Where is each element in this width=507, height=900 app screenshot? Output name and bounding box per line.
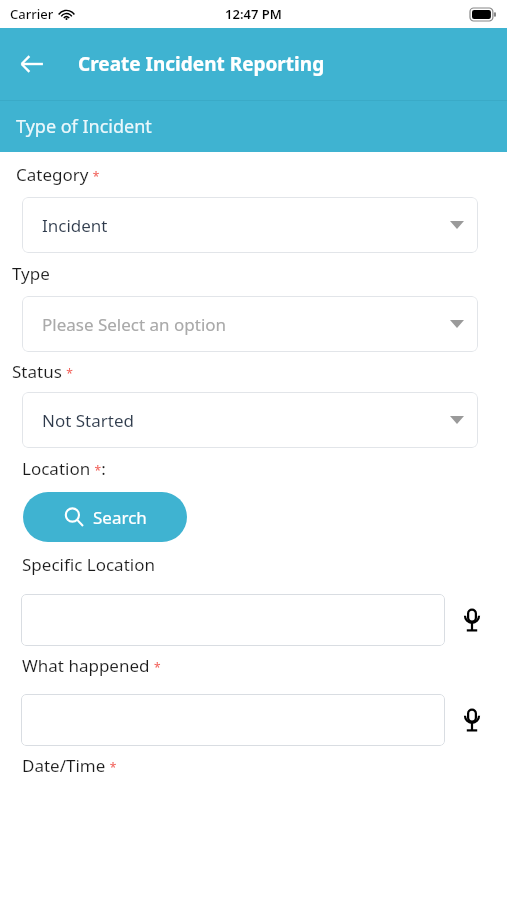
- button[interactable]: [21, 694, 445, 746]
- button[interactable]: Not Started: [22, 392, 478, 448]
- staticText: Date/Time *: [22, 754, 117, 777]
- staticText: Location *:: [22, 457, 106, 480]
- staticText: 12:47 PM: [225, 5, 282, 23]
- button[interactable]: [21, 594, 445, 646]
- staticText: What happened *: [22, 654, 161, 677]
- staticText: Specific Location: [22, 553, 155, 576]
- staticText: Please Select an option: [42, 313, 227, 336]
- button[interactable]: Incident: [22, 197, 478, 253]
- staticText: Type: [12, 262, 50, 285]
- staticText: Create Incident Reporting: [78, 51, 325, 77]
- button[interactable]: Search: [23, 492, 187, 542]
- staticText: Type of Incident: [16, 114, 152, 139]
- button[interactable]: Back: [8, 40, 56, 88]
- button[interactable]: Please Select an option: [22, 296, 478, 352]
- staticText: Search: [93, 506, 147, 529]
- staticText: Carrier: [10, 5, 54, 23]
- staticText: Status *: [12, 360, 73, 383]
- staticText: Category *: [16, 163, 100, 186]
- staticText: Not Started: [42, 409, 134, 432]
- button[interactable]: Voice input: [455, 703, 489, 737]
- button[interactable]: Voice input: [455, 603, 489, 637]
- staticText: Incident: [42, 214, 108, 237]
